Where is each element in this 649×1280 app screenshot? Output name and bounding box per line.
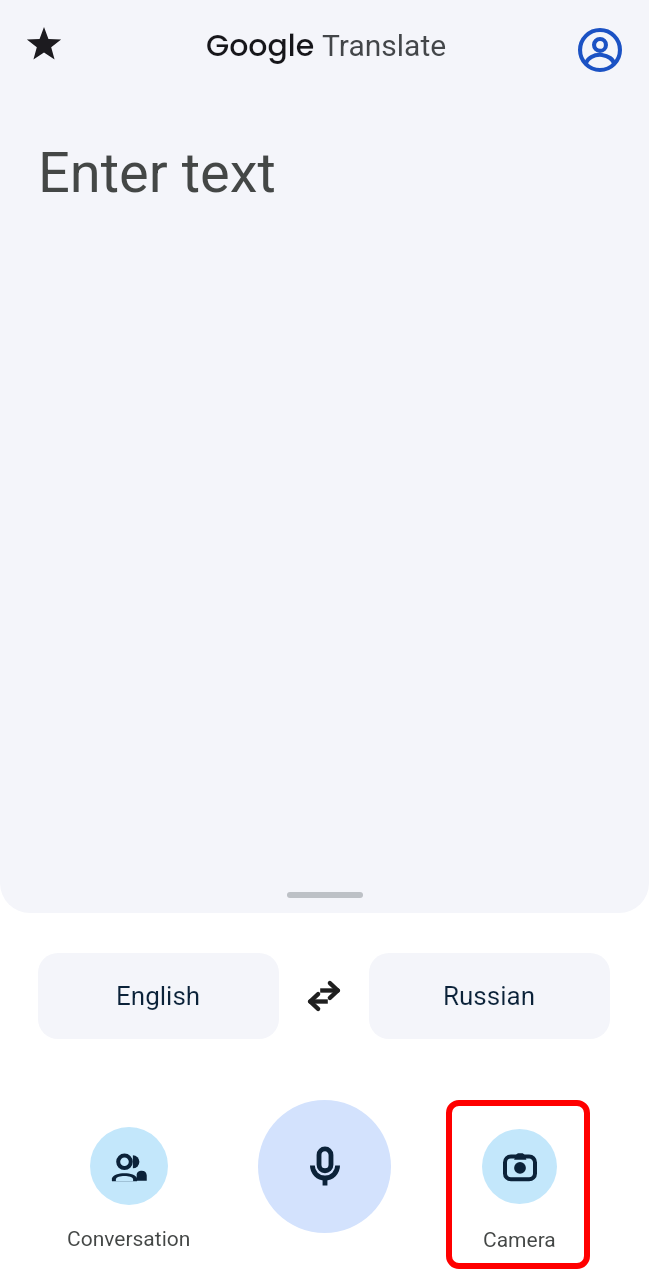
staticText: Enter text: [38, 140, 276, 206]
staticText: Google Translate: [206, 24, 447, 67]
button[interactable]: English: [38, 953, 279, 1039]
button[interactable]: Voice input: [252, 1080, 396, 1233]
staticText: Camera: [483, 1228, 556, 1253]
staticText: English: [116, 981, 201, 1011]
button[interactable]: Russian: [369, 953, 610, 1039]
staticText: Conversation: [67, 1227, 191, 1252]
button[interactable]: Camera: [447, 1080, 591, 1253]
button[interactable]: Swap languages: [279, 953, 369, 1039]
staticText: Russian: [443, 981, 536, 1011]
button[interactable]: Account: [576, 26, 624, 74]
button[interactable]: Saved: [22, 23, 66, 67]
button[interactable]: Conversation: [57, 1080, 201, 1252]
